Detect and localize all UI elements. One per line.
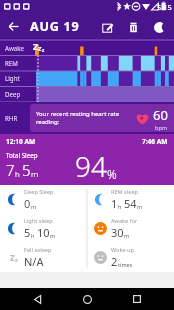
staticText: 5:15 xyxy=(157,2,172,12)
button[interactable]: Your recent resting heart rate reading: xyxy=(30,104,174,132)
staticText: m xyxy=(31,168,39,179)
staticText: 5 xyxy=(22,160,31,180)
button[interactable]: Back xyxy=(0,13,27,40)
button[interactable]: Deep Sleep xyxy=(0,185,87,214)
staticText: N/A xyxy=(24,254,44,269)
staticText: Fell asleep xyxy=(24,246,52,254)
staticText: Total Sleep xyxy=(6,151,38,159)
button[interactable]: Recents xyxy=(124,288,150,310)
staticText: Deep xyxy=(5,90,21,98)
staticText: 7 xyxy=(6,160,15,180)
button[interactable]: Delete xyxy=(120,14,146,40)
staticText: 7:46 AM xyxy=(142,137,168,146)
button[interactable]: Z xyxy=(0,243,87,272)
button[interactable]: Awake for xyxy=(87,214,174,243)
staticText: RHR xyxy=(5,114,18,122)
staticText: m xyxy=(124,232,130,239)
staticText: Awake xyxy=(5,44,25,52)
staticText: 94 xyxy=(75,147,107,185)
staticText: bpm xyxy=(155,124,167,131)
staticText: Light xyxy=(5,74,20,82)
staticText: 12:10 AM xyxy=(6,137,36,146)
staticText: m xyxy=(137,203,143,210)
staticText: 30 xyxy=(111,225,124,240)
button[interactable]: Back xyxy=(24,288,50,310)
staticText: h xyxy=(31,232,35,239)
button[interactable]: Woke up xyxy=(87,243,174,272)
staticText: m xyxy=(50,232,56,239)
staticText: m xyxy=(31,203,37,210)
button[interactable]: 12:10 AM xyxy=(0,134,174,185)
staticText: Deep Sleep xyxy=(24,188,54,196)
staticText: z xyxy=(15,256,18,263)
staticText: Z xyxy=(33,41,38,53)
staticText: 0 xyxy=(24,196,31,211)
staticText: AUG 19 xyxy=(30,18,80,35)
button[interactable]: Home xyxy=(74,288,100,310)
staticText: Awake for xyxy=(111,217,138,225)
staticText: Light sleep xyxy=(24,217,53,225)
button[interactable]: Night mode xyxy=(146,14,172,40)
staticText: Woke up xyxy=(111,246,134,254)
staticText: Z xyxy=(38,45,42,53)
staticText: REM xyxy=(5,59,18,67)
staticText: 10 xyxy=(37,225,50,240)
button[interactable]: Edit xyxy=(94,14,120,40)
staticText: h xyxy=(118,203,122,210)
staticText: Z xyxy=(10,252,15,263)
staticText: 2 xyxy=(111,254,118,269)
staticText: z xyxy=(42,47,45,53)
button[interactable]: Light sleep xyxy=(0,214,87,243)
staticText: h xyxy=(15,168,20,179)
staticText: 60 xyxy=(153,106,168,124)
staticText: 5 xyxy=(24,225,31,240)
button[interactable]: REM sleep xyxy=(87,185,174,214)
staticText: times xyxy=(118,261,133,268)
staticText: 1 xyxy=(111,196,118,211)
staticText: % xyxy=(107,166,117,182)
staticText: 54 xyxy=(124,196,137,211)
staticText: REM sleep xyxy=(111,188,138,196)
staticText: Your recent resting heart rate reading: xyxy=(36,110,135,126)
